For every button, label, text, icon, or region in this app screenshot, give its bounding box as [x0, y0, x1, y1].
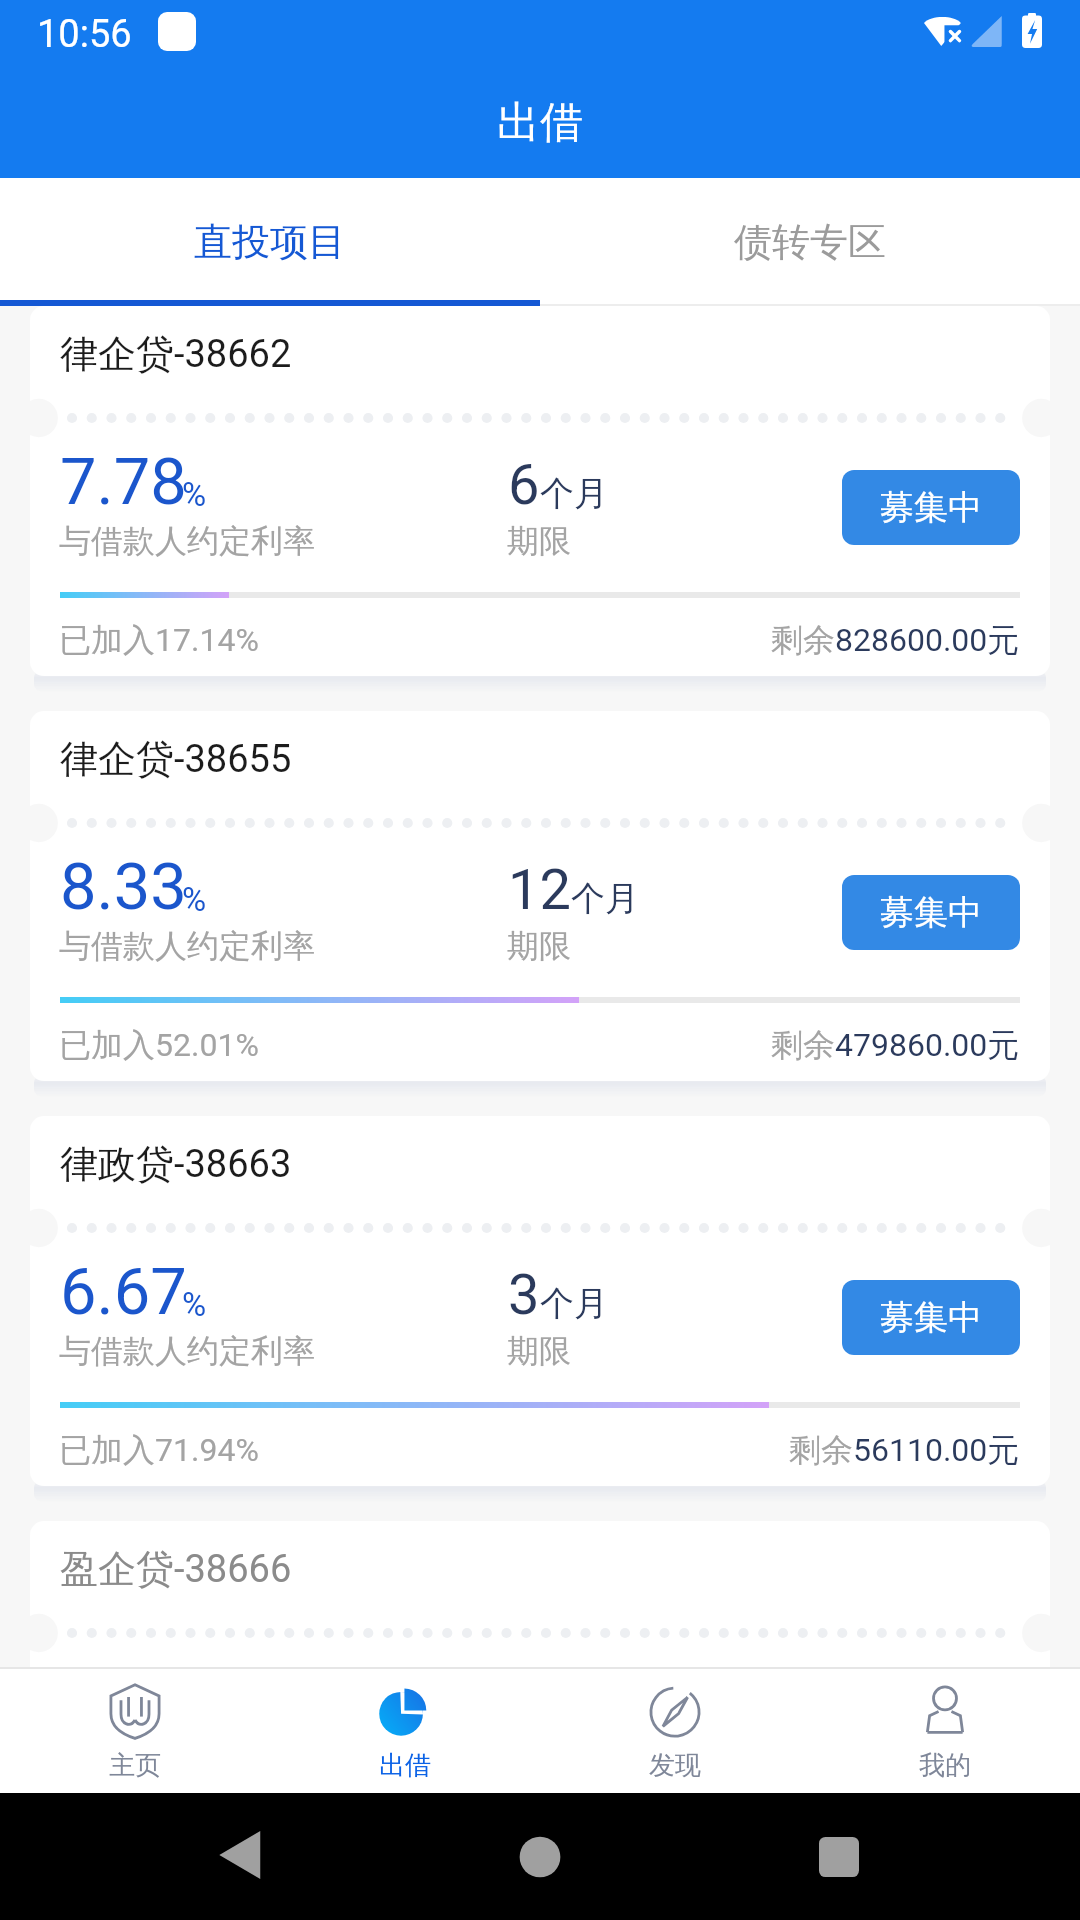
staticText: % — [182, 880, 207, 919]
staticText: 10:56 — [37, 12, 132, 57]
button[interactable]: 直投项目 — [0, 178, 540, 300]
button[interactable]: 我的 — [810, 1667, 1080, 1793]
staticText: 主页 — [109, 1749, 161, 1782]
staticText: 剩余 — [789, 1430, 853, 1470]
staticText: 与借款人约定利率 — [59, 521, 315, 561]
button[interactable]: 发现 — [540, 1667, 810, 1793]
button[interactable]: Home — [493, 1810, 587, 1904]
staticText: 3 — [508, 1262, 540, 1328]
staticText: 剩余 — [771, 620, 835, 660]
staticText: 律政贷-38663 — [60, 1140, 292, 1188]
button[interactable]: 募集中 — [842, 470, 1020, 545]
staticText: 个月 — [540, 1282, 608, 1325]
staticText: 律企贷-38655 — [60, 735, 292, 783]
staticText: 7.78 — [60, 444, 187, 520]
staticText: 300000.00元 — [835, 1835, 1020, 1875]
button[interactable]: 募集中 — [842, 1685, 1020, 1760]
staticText: 已加入71.94% — [59, 1430, 259, 1470]
staticText: 盈企贷-38666 — [60, 1545, 292, 1593]
button[interactable]: 出借 — [270, 1667, 540, 1793]
staticText: 56110.00元 — [853, 1430, 1020, 1470]
staticText: 直投项目 — [194, 218, 346, 266]
staticText: 期限 — [507, 926, 571, 966]
staticText: 出借 — [379, 1749, 431, 1782]
staticText: 债转专区 — [734, 218, 886, 266]
staticText: 6 — [508, 452, 540, 518]
button[interactable]: 律政贷-38663 — [30, 1116, 1050, 1486]
staticText: 已加入40.00% — [59, 1835, 259, 1875]
button[interactable]: 募集中 — [842, 1280, 1020, 1355]
button[interactable]: 律企贷-38655 — [30, 711, 1050, 1081]
staticText: 剩余 — [771, 1025, 835, 1065]
staticText: 7.20 — [60, 1659, 187, 1735]
staticText: 募集中 — [880, 891, 982, 934]
staticText: 已加入52.01% — [59, 1025, 259, 1065]
staticText: 律企贷-38662 — [60, 330, 292, 378]
staticText: 个月 — [540, 472, 608, 515]
button[interactable]: 主页 — [0, 1667, 270, 1793]
staticText: 期限 — [507, 521, 571, 561]
button[interactable]: 盈企贷-38666 — [30, 1521, 1050, 1891]
button[interactable]: 律企贷-38662 — [30, 306, 1050, 676]
button[interactable]: Recents — [787, 1810, 881, 1904]
button[interactable]: 债转专区 — [540, 178, 1080, 300]
button[interactable]: Back — [200, 1810, 294, 1904]
staticText: 12 — [508, 857, 571, 923]
staticText: 8.33 — [60, 849, 187, 925]
staticText: % — [182, 1285, 207, 1324]
staticText: 6.67 — [60, 1254, 187, 1330]
staticText: 与借款人约定利率 — [59, 1331, 315, 1371]
staticText: 与借款人约定利率 — [59, 1736, 315, 1776]
staticText: 募集中 — [880, 1296, 982, 1339]
staticText: 与借款人约定利率 — [59, 926, 315, 966]
button[interactable]: 募集中 — [842, 875, 1020, 950]
staticText: 募集中 — [880, 486, 982, 529]
staticText: 已加入17.14% — [59, 620, 259, 660]
staticText: 6 — [508, 1667, 540, 1733]
staticText: 我的 — [919, 1749, 971, 1782]
staticText: 剩余 — [771, 1835, 835, 1875]
staticText: 479860.00元 — [835, 1025, 1020, 1065]
staticText: % — [182, 475, 207, 514]
staticText: 出借 — [497, 96, 583, 150]
staticText: 募集中 — [880, 1701, 982, 1744]
staticText: 期限 — [507, 1331, 571, 1371]
staticText: 个月 — [571, 877, 639, 920]
staticText: 828600.00元 — [835, 620, 1020, 660]
staticText: 发现 — [649, 1749, 701, 1782]
